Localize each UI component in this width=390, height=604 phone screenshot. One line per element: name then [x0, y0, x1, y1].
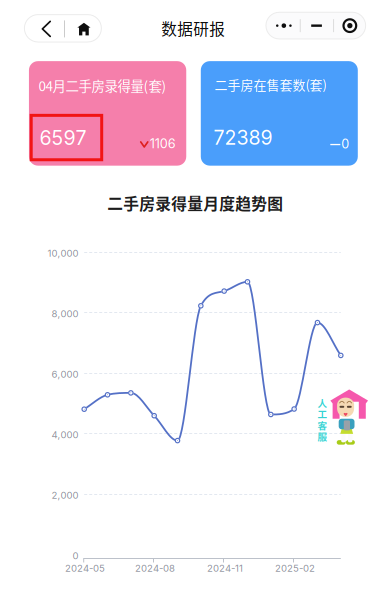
- staticText: 10,000: [48, 247, 79, 259]
- staticText: 人: [318, 396, 328, 410]
- staticText: 6597: [39, 126, 86, 150]
- staticText: 4,000: [52, 429, 79, 440]
- button[interactable]: 人工客服: [0, 0, 390, 604]
- staticText: 0: [73, 550, 79, 561]
- staticText: 2024-11: [207, 562, 243, 574]
- staticText: 1106: [150, 136, 176, 151]
- staticText: 2025-02: [275, 562, 315, 574]
- staticText: 服: [318, 429, 328, 443]
- staticText: 工: [318, 407, 328, 421]
- staticText: 二手房录得量月度趋势图: [107, 191, 283, 214]
- button[interactable]: More options and close: [266, 12, 366, 39]
- staticText: 72389: [213, 126, 272, 149]
- button[interactable]: 04月二手房录得量(套) 6597: [29, 61, 186, 166]
- button[interactable]: 二手房在售套数(套) 72389: [201, 61, 358, 166]
- staticText: 04月二手房录得量(套): [38, 76, 166, 95]
- staticText: 2024-05: [65, 562, 105, 574]
- staticText: 6,000: [52, 368, 79, 380]
- staticText: 8,000: [52, 308, 79, 319]
- staticText: 客: [318, 418, 328, 432]
- staticText: 二手房在售套数(套): [214, 75, 326, 94]
- staticText: 0: [341, 136, 349, 152]
- staticText: 2024-08: [135, 562, 175, 574]
- staticText: 数据研报: [161, 17, 225, 40]
- staticText: 2,000: [52, 489, 79, 501]
- button[interactable]: Back and Home: [24, 15, 101, 42]
